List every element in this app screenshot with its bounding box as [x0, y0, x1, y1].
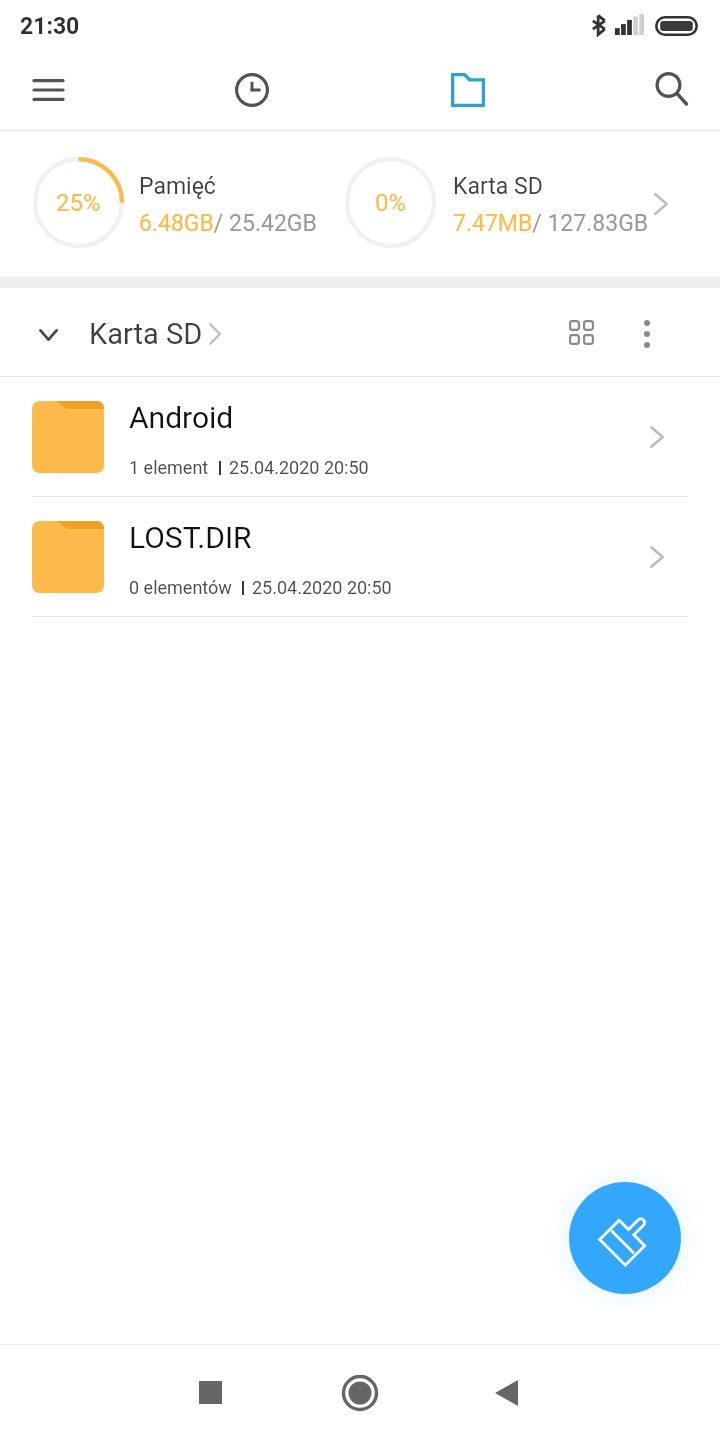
staticText: 21:30: [20, 13, 80, 40]
button[interactable]: Grid view: [551, 288, 611, 376]
button[interactable]: Collapse: [20, 307, 76, 363]
staticText: 1 element: [129, 457, 209, 478]
button[interactable]: Menu: [0, 56, 96, 130]
button[interactable]: Search: [624, 56, 720, 130]
button[interactable]: Files: [420, 56, 516, 130]
staticText: Karta SD: [89, 317, 203, 351]
button[interactable]: Android: [0, 377, 720, 497]
staticText: Pamięć: [139, 173, 216, 200]
staticText: LOST.DIR: [129, 520, 252, 555]
button[interactable]: LOST.DIR: [0, 497, 720, 617]
button[interactable]: Back: [446, 1345, 566, 1440]
staticText: Karta SD: [453, 173, 543, 200]
staticText: Android: [129, 400, 234, 435]
button[interactable]: Recent: [204, 56, 300, 130]
staticText: 25%: [56, 189, 101, 217]
button[interactable]: 25%: [0, 131, 720, 277]
staticText: 0 elementów: [129, 577, 232, 598]
button[interactable]: Karta SD: [89, 317, 221, 351]
staticText: 7.47MB/ 127.83GB: [453, 210, 649, 237]
button[interactable]: Home: [300, 1345, 420, 1440]
staticText: 25.04.2020 20:50: [252, 577, 392, 598]
staticText: 0%: [375, 189, 407, 217]
staticText: 6.48GB/ 25.42GB: [139, 210, 317, 237]
button[interactable]: More options: [617, 290, 677, 378]
button[interactable]: Clean: [569, 1182, 681, 1294]
button[interactable]: Recent apps: [150, 1345, 270, 1440]
staticText: 25.04.2020 20:50: [229, 457, 369, 478]
